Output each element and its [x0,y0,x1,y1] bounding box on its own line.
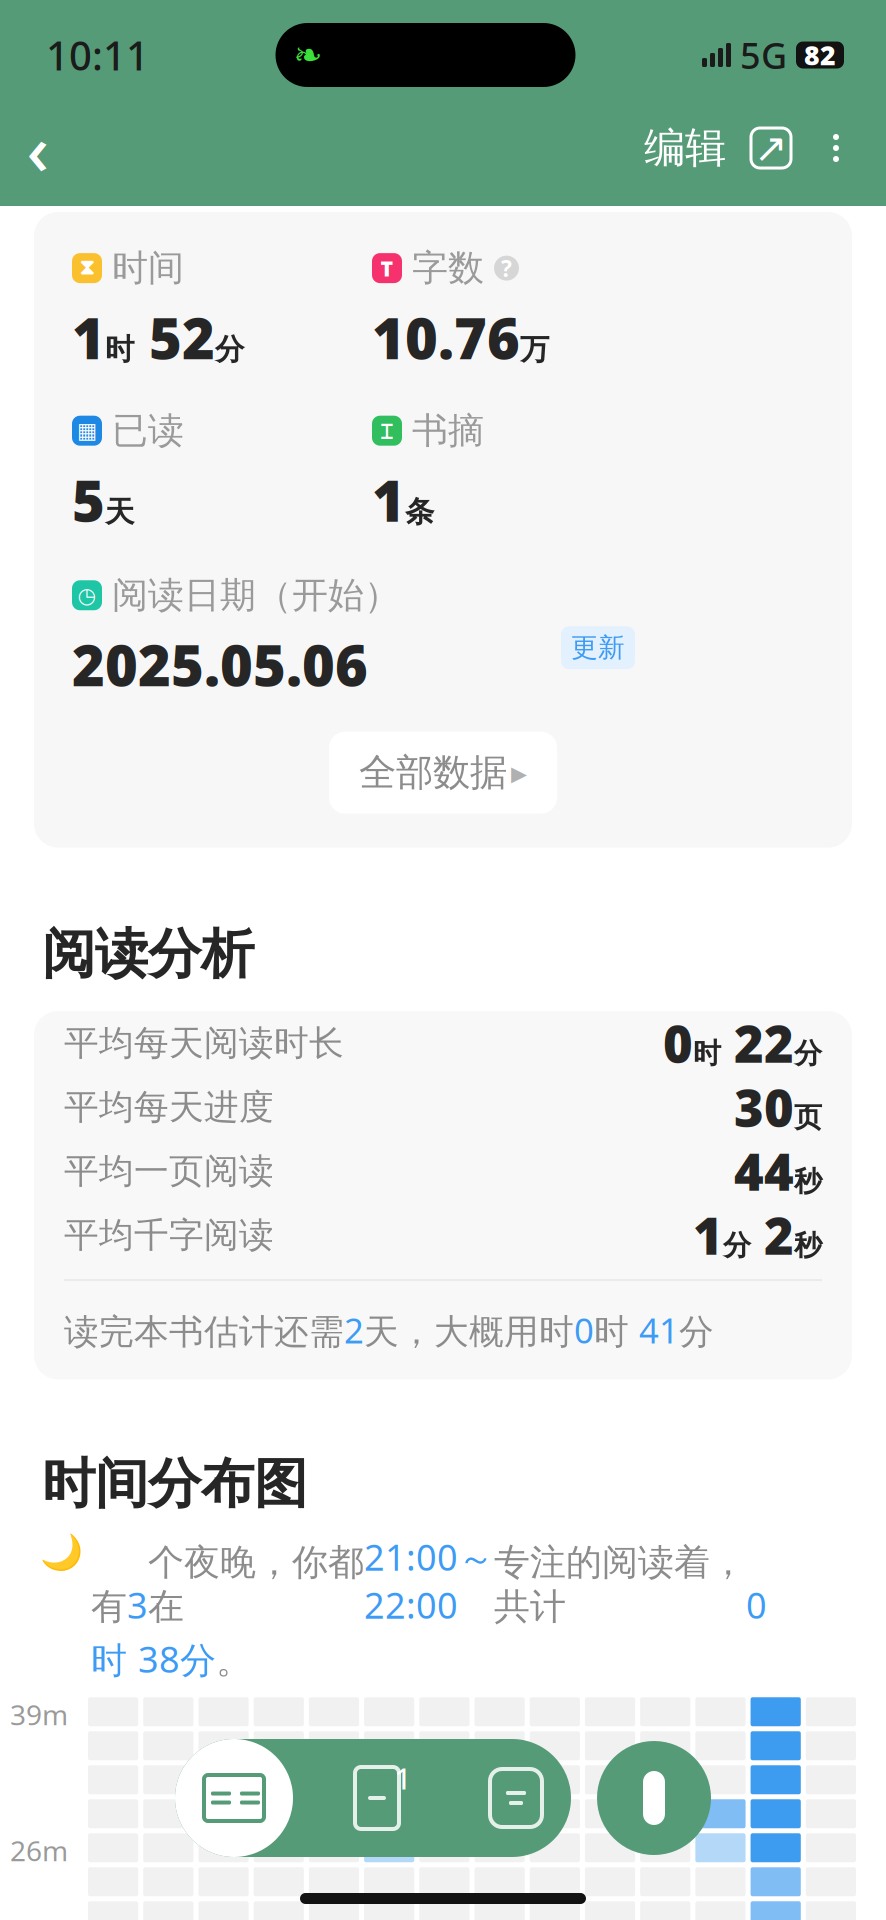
staticText: 时 [594,1311,639,1353]
staticText: 读完本书估计还需 [64,1311,344,1353]
staticText: 全部数据 [359,750,507,796]
button[interactable]: Back [0,110,76,186]
staticText: 万 [520,331,549,367]
staticText: 26m [10,1832,68,1869]
staticText: 天，大概用时 [364,1311,574,1353]
staticText: 已读 [112,409,184,453]
staticText: 10.76 [372,300,520,375]
staticText: 阅读分析 [42,922,254,987]
button[interactable]: 编辑 [636,110,734,186]
staticText: 时 [105,331,134,367]
staticText: 2025.05.06 [72,627,368,702]
staticText: 52 [149,300,215,375]
staticText: 21:00～22:00 [364,1533,494,1629]
staticText: 天 [105,494,134,530]
staticText: ⌶ [380,416,393,445]
staticText [134,300,149,375]
staticText: 30 [734,1073,794,1141]
staticText: 条 [405,494,434,530]
staticText: 专注的阅读着，共计 [494,1540,746,1629]
staticText: 时 [693,1036,721,1071]
staticText: 5 [72,463,105,537]
staticText: ◷ [77,583,96,607]
button[interactable]: Read [175,1739,293,1857]
button[interactable]: Share [734,110,808,186]
staticText: 时间分布图 [42,1451,307,1517]
staticText: 39m [10,1696,68,1733]
button[interactable]: Bookmarks, 1 [322,1739,432,1857]
staticText: ⧗ [79,258,94,278]
staticText: 时 [91,1639,138,1683]
staticText [721,1009,734,1077]
staticText: ‹ [26,102,49,194]
staticText: 分 [180,1639,216,1683]
staticText: 字数 [412,246,484,290]
staticText: 分 [794,1036,822,1071]
staticText: ▦ [77,419,97,443]
staticText: 5G [740,31,787,79]
staticText: 书摘 [412,409,484,453]
staticText: ↗ [754,125,788,171]
button[interactable]: Notes [461,1739,571,1857]
staticText: 平均每天阅读时长 [64,1022,344,1064]
staticText: 0 [663,1009,693,1077]
staticText: 38 [138,1635,180,1683]
staticText: 分 [679,1311,714,1353]
staticText: 平均一页阅读 [64,1150,274,1192]
staticText: 2 [344,1307,364,1353]
staticText: 秒 [794,1164,822,1199]
staticText: 平均每天进度 [64,1086,274,1128]
staticText: 。 [216,1639,252,1683]
staticText: 1 [372,463,405,537]
staticText: 平均千字阅读 [64,1214,274,1256]
staticText: 41 [639,1307,679,1353]
staticText: 🌙 [40,1533,83,1572]
staticText: ❧ [293,35,322,75]
staticText: 秒 [794,1228,822,1263]
staticText: 1 [394,1758,411,1797]
staticText: 有 [91,1585,127,1629]
staticText: 1 [72,300,105,375]
staticText: 10:11 [46,28,149,81]
staticText: 0 [574,1307,594,1353]
staticText: 时间 [112,246,184,290]
staticText: 分 [215,331,244,367]
staticText: 阅读日期（开始） [112,573,400,617]
button[interactable]: 全部数据 [329,732,557,814]
staticText: 更新 [571,631,625,664]
staticText: 页 [794,1100,822,1135]
staticText: 44 [734,1137,794,1205]
staticText: 0 [746,1581,767,1629]
staticText: T [380,254,393,282]
staticText: 编辑 [644,123,726,173]
staticText: 82 [804,37,836,73]
staticText: 1 [693,1201,723,1269]
staticText: 22 [734,1009,794,1077]
staticText: 个夜晚，你都在 [148,1540,364,1629]
staticText: 分 [723,1228,751,1263]
button[interactable]: Write note [597,1741,711,1855]
staticText: 2 [764,1201,794,1269]
staticText: ? [501,253,512,283]
staticText: 3 [127,1581,148,1629]
staticText: ▸ [511,754,527,791]
button[interactable]: More [808,110,864,186]
